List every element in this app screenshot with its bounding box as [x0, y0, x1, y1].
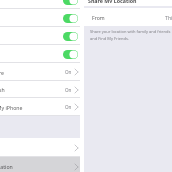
button[interactable]: Toggle	[63, 14, 78, 23]
staticText: Share your location with family and frie…	[90, 29, 171, 34]
staticText: This iPhone	[165, 14, 172, 21]
staticText: Share My Location	[0, 163, 13, 170]
button[interactable]: Share	[0, 63, 80, 81]
staticText: Share My Location	[88, 0, 137, 3]
button[interactable]: Share My Location	[0, 157, 80, 172]
button[interactable]: Toggle	[63, 0, 78, 5]
button[interactable]: Refresh	[0, 81, 80, 98]
button[interactable]: Toggle	[0, 0, 80, 9]
staticText: On	[65, 69, 72, 75]
button[interactable]: Toggle	[0, 45, 80, 63]
staticText: Refresh	[0, 86, 5, 93]
staticText: From	[92, 14, 105, 21]
button[interactable]: Toggle	[0, 9, 80, 27]
button[interactable]: Toggle	[63, 32, 78, 41]
button[interactable]: From	[84, 8, 172, 26]
staticText: On	[65, 87, 72, 93]
staticText: Find My iPhone	[0, 104, 23, 111]
staticText: and Find My Friends.	[90, 36, 129, 41]
staticText: On	[65, 104, 72, 110]
button[interactable]: Toggle	[0, 27, 80, 45]
button[interactable]: Find My iPhone	[0, 98, 80, 116]
button[interactable]	[0, 138, 80, 157]
button[interactable]: Toggle	[63, 50, 78, 59]
staticText: Share	[0, 69, 4, 76]
